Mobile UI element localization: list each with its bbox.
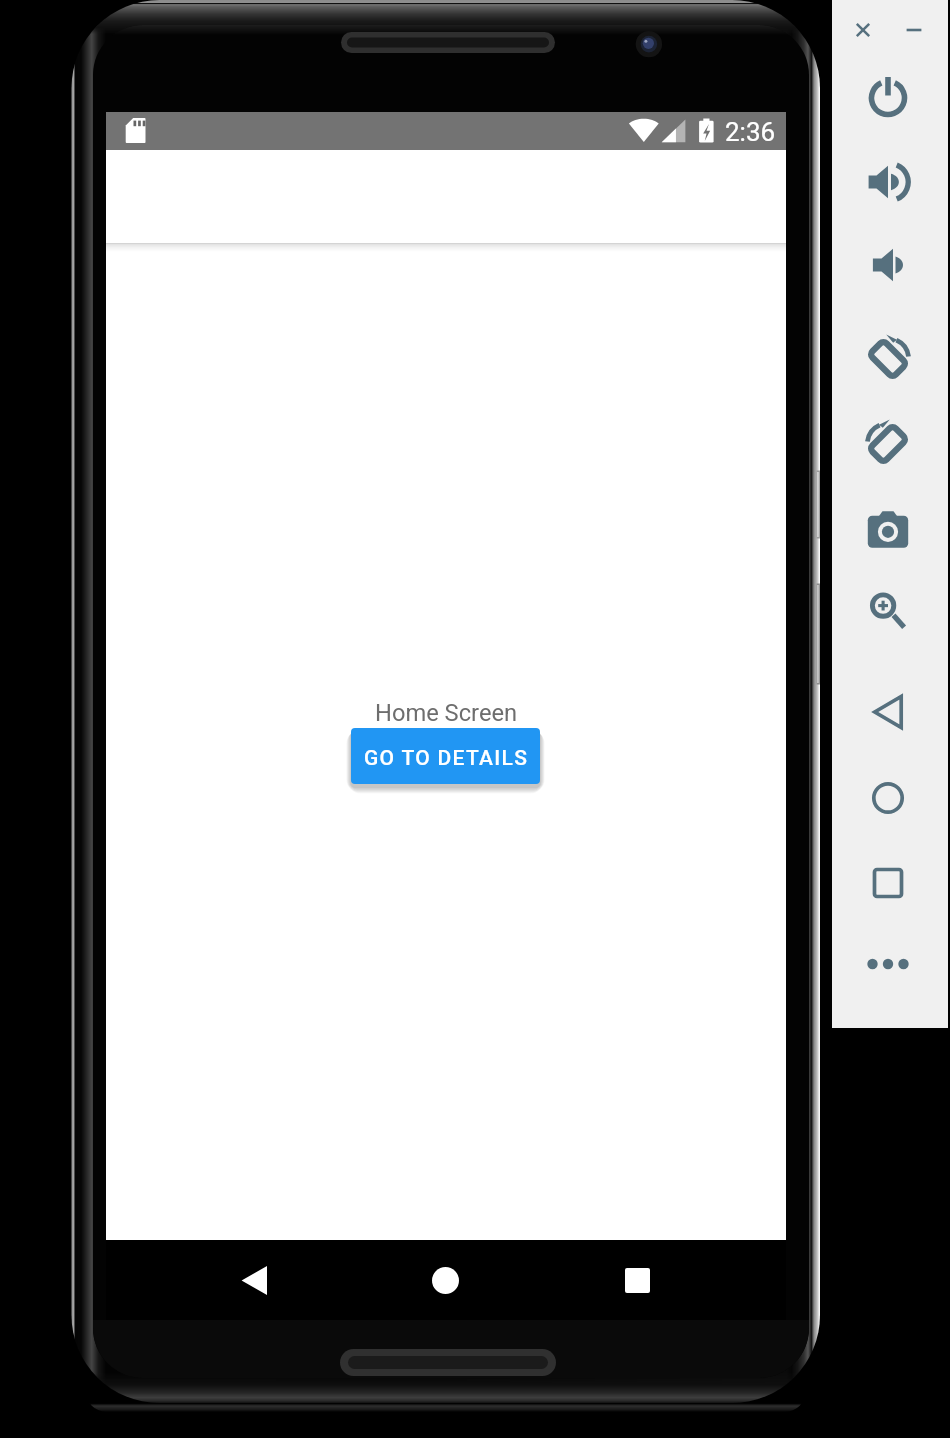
staticText: 2:36 [725,117,776,147]
button[interactable]: Power [860,69,916,125]
button[interactable]: Minimize [898,14,930,46]
button[interactable]: Volume up [860,154,916,210]
button[interactable]: Recents [596,1240,678,1320]
button[interactable]: Volume down [860,237,916,293]
button[interactable]: Zoom [860,584,916,640]
button[interactable]: GO TO DETAILS [351,728,540,784]
button[interactable]: Back [214,1240,296,1320]
button[interactable]: Rotate left [860,330,916,386]
button[interactable]: Back [860,684,916,740]
button[interactable]: Overview [860,855,916,911]
staticText: GO TO DETAILS [364,746,529,771]
button[interactable]: Rotate right [860,415,916,471]
button[interactable]: Close [847,14,879,46]
button[interactable]: Take screenshot [860,503,916,559]
button[interactable]: Home [404,1240,486,1320]
staticText: Home Screen [375,699,518,727]
button[interactable]: Home [860,770,916,826]
button[interactable]: More [860,936,916,992]
